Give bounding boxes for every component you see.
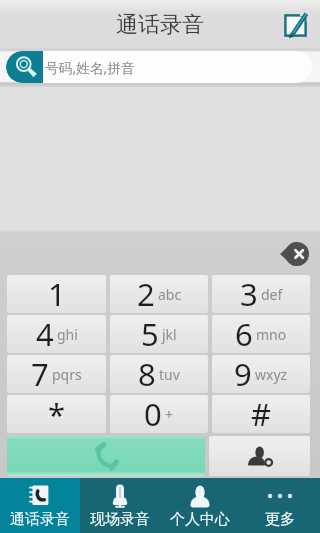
staticText: 3	[240, 275, 258, 311]
button[interactable]: 5	[110, 315, 208, 353]
button[interactable]: Add contact	[209, 436, 310, 476]
staticText: 4	[36, 315, 54, 351]
staticText: 1	[48, 275, 66, 311]
button[interactable]: 2	[110, 275, 208, 313]
staticText: def	[261, 285, 283, 304]
staticText: 9	[234, 355, 252, 391]
staticText: 更多	[265, 510, 295, 529]
button[interactable]: 个人中心	[160, 478, 240, 533]
button[interactable]: *	[7, 395, 106, 433]
button[interactable]: 号码,姓名,拼音	[6, 51, 312, 83]
staticText: 0	[144, 395, 162, 431]
button[interactable]: 6	[212, 315, 310, 353]
staticText: #	[251, 395, 272, 431]
staticText: 通话录音	[10, 510, 70, 529]
button[interactable]: 更多	[240, 478, 320, 533]
staticText: 8	[138, 355, 156, 391]
staticText: 5	[141, 315, 159, 351]
button[interactable]: 1	[7, 275, 106, 313]
staticText: tuv	[159, 365, 180, 384]
staticText: 6	[235, 315, 253, 351]
button[interactable]: 现场录音	[80, 478, 160, 533]
button[interactable]: Call	[7, 436, 205, 476]
staticText: 现场录音	[90, 510, 150, 529]
button[interactable]: 8	[110, 355, 208, 393]
button[interactable]: 7	[7, 355, 106, 393]
staticText: 2	[137, 275, 155, 311]
staticText: mno	[256, 325, 287, 344]
button[interactable]: #	[212, 395, 310, 433]
staticText: ghi	[57, 325, 78, 344]
staticText: jkl	[162, 325, 177, 344]
staticText: 个人中心	[170, 510, 230, 529]
button[interactable]: 通话录音	[0, 478, 80, 533]
button[interactable]: 4	[7, 315, 106, 353]
staticText: pqrs	[52, 365, 82, 384]
button[interactable]: New recording	[283, 8, 310, 39]
staticText: wxyz	[255, 365, 288, 384]
staticText: *	[48, 395, 66, 431]
button[interactable]: Backspace	[280, 242, 309, 266]
staticText: 7	[31, 355, 49, 391]
staticText: +	[165, 405, 174, 424]
button[interactable]: 3	[212, 275, 310, 313]
staticText: abc	[158, 285, 182, 304]
staticText: 通话录音	[116, 11, 204, 39]
button[interactable]: 9	[212, 355, 310, 393]
staticText: 号码,姓名,拼音	[45, 58, 135, 77]
button[interactable]: 0	[110, 395, 208, 433]
